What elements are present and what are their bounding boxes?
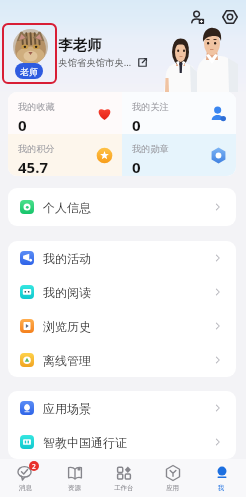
staticText: 0 [132,157,141,176]
staticText: 2 [32,462,36,471]
staticText: 0 [18,115,27,135]
staticText: 资源 [68,484,81,492]
button[interactable]: 我的勋章 [122,134,236,176]
staticText: 我的收藏 [18,101,55,113]
button[interactable]: Avatar [13,29,48,64]
staticText: 消息 [19,484,32,492]
button[interactable]: 我的关注 [122,92,236,134]
staticText: 工作台 [114,484,134,492]
staticText: 45.7 [18,157,48,176]
button[interactable]: 2 [0,459,50,497]
button[interactable]: 应用场景 [8,391,236,425]
button[interactable]: 智教中国通行证 [8,425,236,459]
button[interactable]: 我的活动 [8,241,236,275]
button[interactable]: 我的积分 [8,134,122,176]
staticText: 我 [218,484,225,492]
button[interactable]: 离线管理 [8,343,236,377]
staticText: 个人信息 [43,200,91,215]
button[interactable]: Settings [219,6,241,28]
staticText: 智教中国通行证 [43,435,127,450]
button[interactable]: 我的收藏 [8,92,122,134]
staticText: 应用场景 [43,401,91,416]
staticText: 离线管理 [43,353,91,368]
staticText: 李老师 [58,36,102,54]
staticText: 我的积分 [18,143,55,155]
button[interactable]: 工作台 [99,459,148,497]
button[interactable]: 我 [197,459,246,497]
button[interactable]: 我的阅读 [8,275,236,309]
button[interactable]: 个人信息 [8,188,236,226]
staticText: 我的活动 [43,251,91,266]
button[interactable]: 资源 [50,459,99,497]
staticText: 应用 [166,484,179,492]
button[interactable]: 应用 [148,459,197,497]
button[interactable]: 浏览历史 [8,309,236,343]
staticText: 我的阅读 [43,285,91,300]
staticText: 浏览历史 [43,319,91,334]
staticText: 老师 [20,66,38,77]
button[interactable]: Add friend [186,6,208,28]
staticText: 我的勋章 [132,143,169,155]
staticText: 0 [132,115,141,135]
staticText: 我的关注 [132,101,169,113]
button[interactable]: Edit profile [137,57,148,68]
staticText: 央馆省央馆市央… [58,56,132,69]
